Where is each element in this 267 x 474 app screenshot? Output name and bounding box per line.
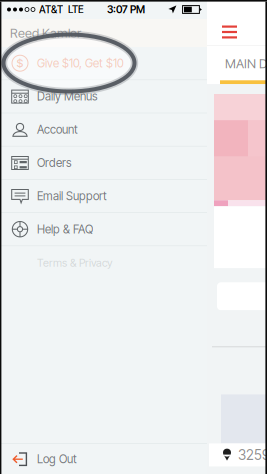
staticText: Terms & Privacy — [37, 256, 113, 269]
staticText: Orders — [37, 156, 72, 170]
staticText: Give $10, Get $10 — [37, 56, 124, 70]
button[interactable]: 3259 cal — [207, 394, 267, 466]
staticText: 3:07 PM — [107, 3, 145, 16]
button[interactable]: Help & FAQ — [0, 213, 207, 245]
staticText: 3259 cal — [238, 446, 267, 463]
button[interactable]: Menu — [216, 19, 243, 44]
button[interactable]: Daily Menus — [0, 80, 207, 113]
button[interactable] — [207, 282, 267, 310]
button[interactable]: Email Support — [0, 180, 207, 212]
staticText: MAIN DISHES — [225, 56, 267, 71]
button[interactable]: Orders — [0, 147, 207, 179]
staticText: Account — [37, 123, 78, 137]
staticText: Daily Menus — [37, 89, 98, 103]
staticText: $ — [16, 56, 23, 70]
staticText: Email Support — [37, 189, 107, 203]
button[interactable]: MAIN DISHES — [207, 46, 267, 80]
staticText: AT&T — [39, 3, 63, 16]
button[interactable]: Account — [0, 113, 207, 146]
staticText: Log Out — [37, 452, 77, 466]
staticText: LTE — [68, 3, 84, 16]
button[interactable]: Log Out — [0, 444, 207, 474]
button[interactable]: love — [207, 94, 267, 268]
button[interactable]: $ — [0, 47, 207, 79]
staticText: Reed Kamler — [10, 25, 81, 41]
staticText: Help & FAQ — [37, 222, 93, 236]
button[interactable]: Terms & Privacy — [0, 246, 207, 279]
